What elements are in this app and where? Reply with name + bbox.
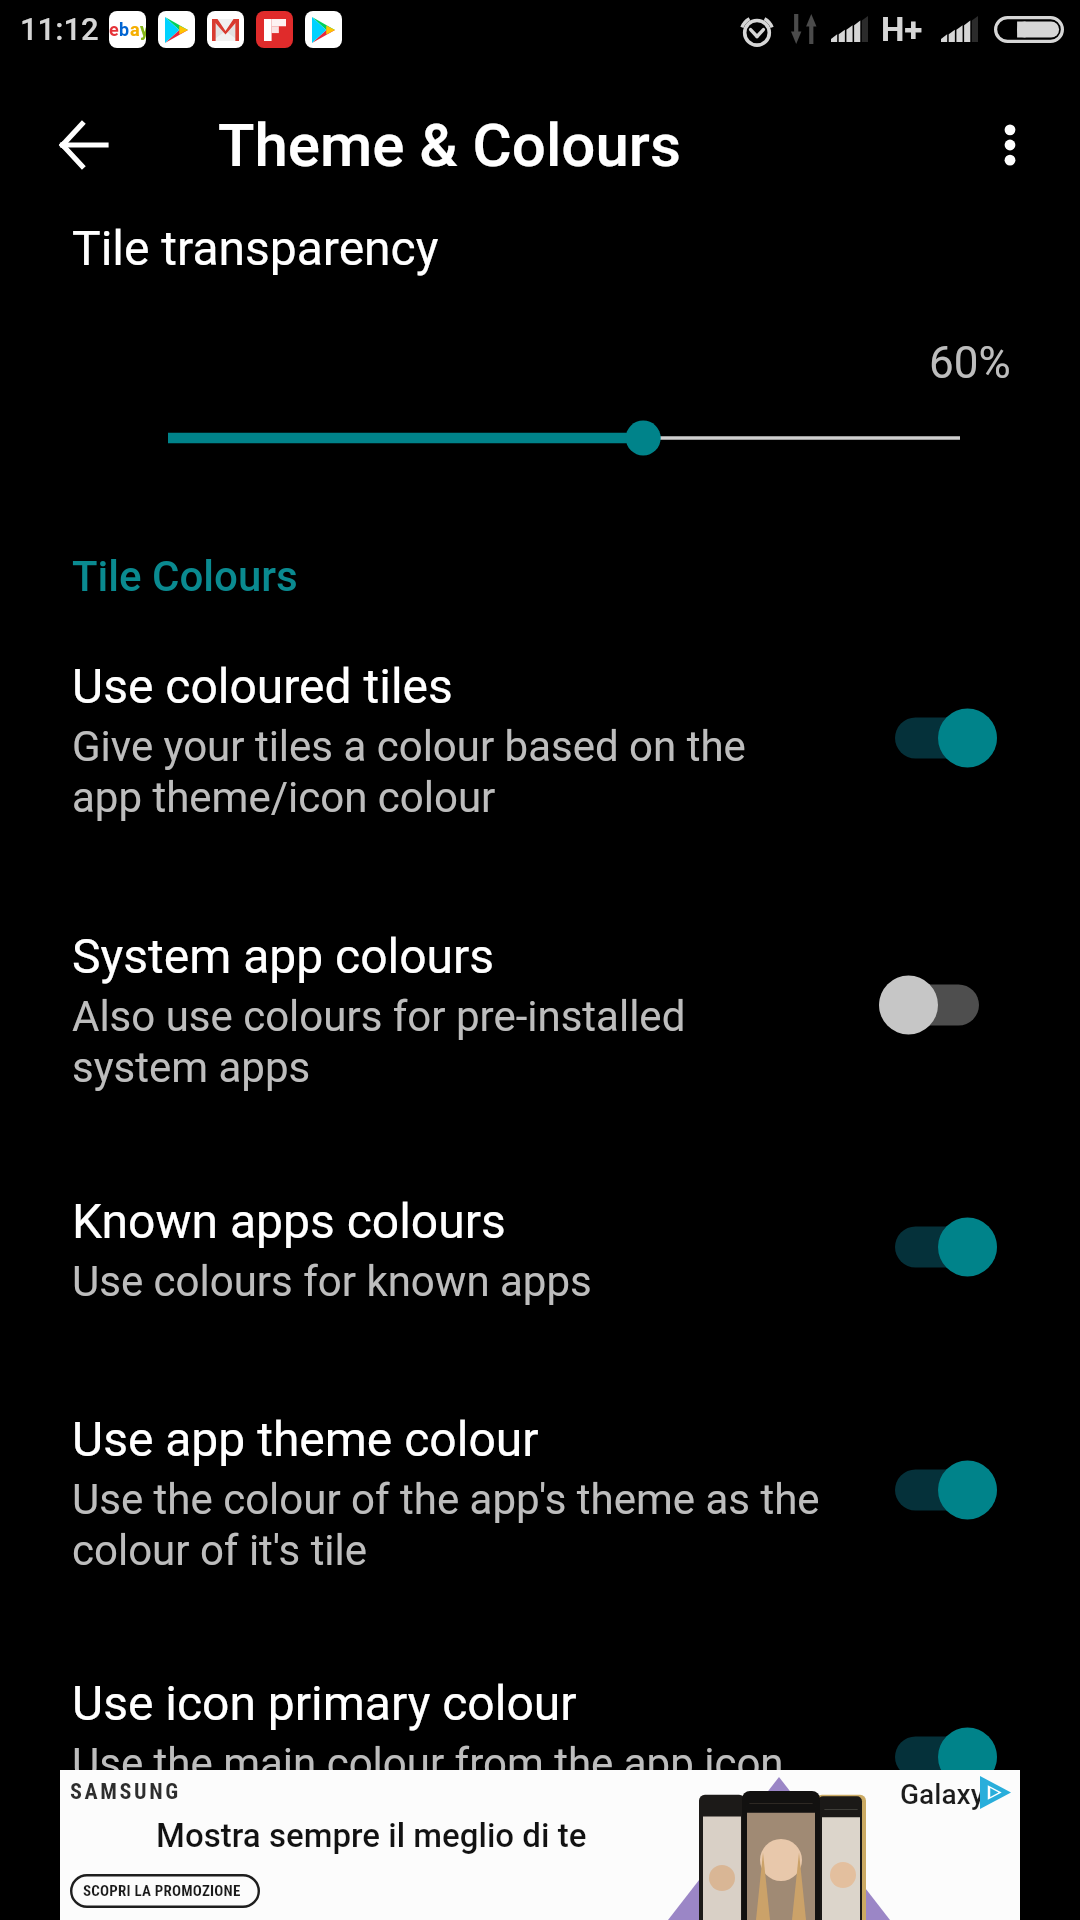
button[interactable]: Use icon primary colour: [0, 1665, 1080, 1825]
button[interactable]: SAMSUNG: [60, 1770, 1020, 1920]
staticText: Tile transparency: [72, 220, 439, 276]
button[interactable]: Use coloured tiles: [0, 648, 1080, 860]
button[interactable]: System app colours: [0, 918, 1080, 1130]
staticText: Use colours for known apps: [72, 1257, 592, 1306]
staticText: SAMSUNG: [70, 1779, 181, 1805]
button[interactable]: More options: [952, 87, 1068, 203]
staticText: Tile Colours: [72, 552, 298, 601]
staticText: Give your tiles a colour based on the ap…: [72, 722, 746, 823]
staticText: Mostra sempre il meglio di te: [156, 1816, 587, 1855]
staticText: System app colours: [72, 928, 495, 984]
staticText: Use app theme colour: [72, 1411, 539, 1467]
staticText: Use coloured tiles: [72, 658, 453, 714]
button[interactable]: Use app theme colour: [0, 1401, 1080, 1613]
staticText: Use the colour of the app's theme as the…: [72, 1475, 820, 1576]
staticText: Also use colours for pre-installed syste…: [72, 992, 686, 1093]
staticText: SCOPRI LA PROMOZIONE: [83, 1882, 241, 1900]
staticText: a: [130, 19, 140, 40]
staticText: Use icon primary colour: [72, 1675, 577, 1731]
button[interactable]: Tile transparency slider, 60%: [0, 410, 1080, 466]
staticText: 11:12: [20, 11, 99, 47]
staticText: y: [140, 19, 146, 40]
staticText: Galaxy: [900, 1778, 985, 1811]
button[interactable]: Navigate up: [26, 87, 142, 203]
button[interactable]: Known apps colours: [0, 1183, 1080, 1343]
staticText: 60%: [929, 337, 1011, 389]
staticText: Theme & Colours: [218, 110, 681, 180]
button[interactable]: SCOPRI LA PROMOZIONE: [70, 1874, 254, 1908]
staticText: H+: [881, 10, 923, 49]
staticText: e: [109, 19, 119, 40]
staticText: Use the main colour from the app icon: [72, 1739, 784, 1788]
staticText: b: [119, 19, 130, 40]
staticText: Known apps colours: [72, 1193, 506, 1249]
